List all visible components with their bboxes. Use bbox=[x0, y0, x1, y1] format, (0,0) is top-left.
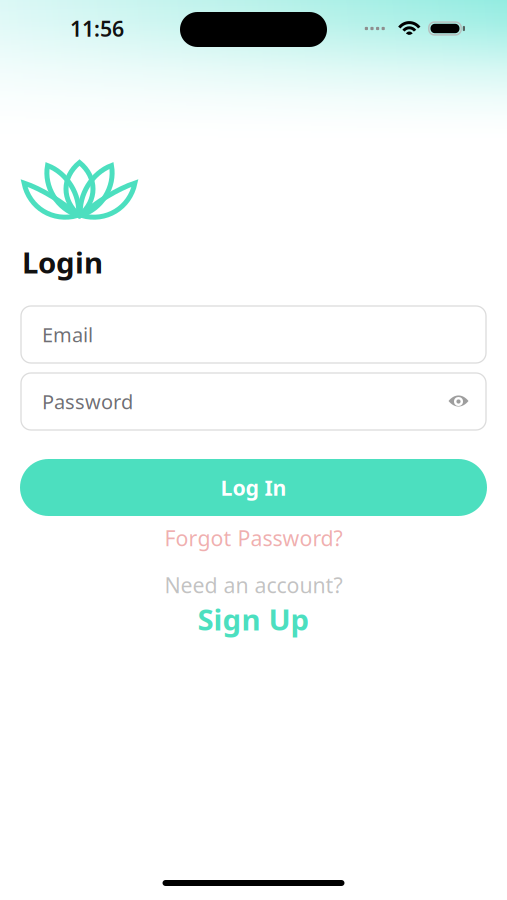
staticText: Login bbox=[22, 242, 103, 281]
staticText: 11:56 bbox=[70, 14, 124, 43]
staticText: Forgot Password? bbox=[164, 524, 342, 552]
staticText: Sign Up bbox=[197, 599, 309, 638]
staticText: Email bbox=[42, 321, 93, 348]
button[interactable]: Show password bbox=[448, 394, 469, 408]
staticText: Password bbox=[42, 388, 133, 415]
staticText: Log In bbox=[220, 473, 286, 502]
button[interactable]: Sign Up bbox=[0, 605, 507, 633]
button[interactable]: Forgot Password? bbox=[0, 525, 507, 551]
staticText: Need an account? bbox=[164, 571, 342, 599]
button[interactable]: Log In bbox=[20, 459, 487, 516]
